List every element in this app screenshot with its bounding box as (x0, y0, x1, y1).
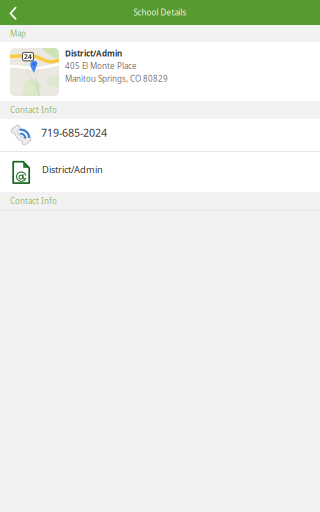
staticText: Google (11, 85, 34, 93)
button[interactable]: District/Admin (0, 152, 320, 192)
staticText: School Details (133, 7, 186, 18)
staticText: District/Admin (65, 48, 122, 59)
staticText: Map (10, 28, 26, 39)
staticText: 24 (24, 52, 32, 61)
staticText: Contact Info (10, 196, 57, 206)
button[interactable]: Back (0, 0, 27, 25)
button[interactable]: 24 (0, 42, 320, 101)
staticText: Manitou Springs, CO 80829 (65, 73, 168, 84)
button[interactable]: 719-685-2024 (0, 119, 320, 151)
staticText: 405 El Monte Place (65, 61, 137, 71)
staticText: 719-685-2024 (41, 125, 107, 140)
staticText: Contact Info (10, 105, 57, 115)
staticText: District/Admin (42, 163, 103, 176)
